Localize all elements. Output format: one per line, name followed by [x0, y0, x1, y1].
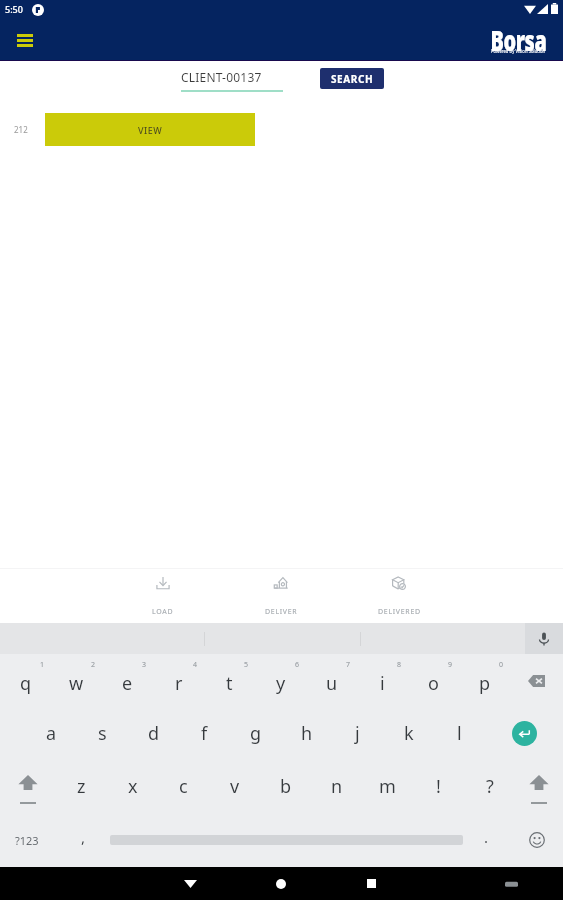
button[interactable]: Menu	[9, 24, 41, 56]
staticText: 5	[244, 660, 249, 670]
staticText: 8	[397, 660, 402, 670]
button[interactable]: s	[77, 707, 128, 760]
button[interactable]: LOAD	[104, 569, 222, 623]
staticText: v	[230, 774, 240, 799]
staticText: 5:50	[5, 3, 23, 15]
button[interactable]: g	[230, 707, 281, 760]
staticText: o	[428, 671, 439, 696]
staticText: n	[331, 774, 343, 799]
staticText: e	[122, 671, 133, 696]
button[interactable]: VIEW	[45, 113, 255, 146]
staticText: 6	[295, 660, 300, 670]
staticText: 7	[346, 660, 351, 670]
staticText: h	[301, 721, 313, 746]
button[interactable]: Back	[175, 867, 205, 900]
button[interactable]: r	[153, 654, 204, 707]
button[interactable]: ?	[464, 760, 515, 813]
button[interactable]: q	[0, 654, 51, 707]
staticText: Borsa	[490, 21, 547, 55]
staticText: f	[201, 721, 208, 746]
staticText: DELIVER	[265, 607, 298, 617]
button[interactable]: ?123	[0, 813, 56, 867]
button[interactable]: t	[204, 654, 255, 707]
staticText: !	[436, 774, 441, 799]
staticText: ?123	[15, 833, 39, 848]
staticText: VIEW	[138, 124, 163, 136]
button[interactable]: o	[408, 654, 459, 707]
button[interactable]: h	[281, 707, 332, 760]
button[interactable]: a	[26, 707, 77, 760]
button[interactable]: Home	[266, 867, 296, 900]
staticText: c	[179, 774, 188, 799]
button[interactable]: l	[434, 707, 485, 760]
staticText: d	[148, 721, 160, 746]
staticText: b	[280, 774, 292, 799]
staticText: m	[379, 774, 396, 799]
button[interactable]: b	[260, 760, 311, 813]
staticText: .	[484, 827, 489, 847]
staticText: 212	[14, 124, 28, 135]
button[interactable]: n	[311, 760, 362, 813]
staticText: LOAD	[152, 607, 174, 617]
staticText: z	[77, 774, 86, 799]
button[interactable]: Emoji	[510, 813, 563, 867]
button[interactable]: .	[463, 813, 510, 867]
button[interactable]: Shift	[515, 760, 563, 813]
staticText: y	[276, 671, 286, 696]
staticText: DELIVERED	[378, 607, 421, 617]
staticText: x	[128, 774, 138, 799]
staticText: q	[20, 671, 32, 696]
staticText: u	[326, 671, 338, 696]
button[interactable]: ,	[56, 813, 110, 867]
staticText: p	[479, 671, 491, 696]
staticText: l	[457, 721, 462, 746]
button[interactable]: f	[179, 707, 230, 760]
button[interactable]: Recents	[356, 867, 386, 900]
button[interactable]: SEARCH	[320, 68, 384, 89]
button[interactable]: Hide keyboard	[496, 867, 526, 900]
button[interactable]: m	[362, 760, 413, 813]
button[interactable]: e	[102, 654, 153, 707]
staticText: ?	[486, 774, 494, 799]
button[interactable]: Backspace	[510, 654, 563, 707]
staticText: s	[98, 721, 107, 746]
staticText: i	[380, 671, 385, 696]
staticText: CLIENT-00137	[181, 69, 262, 85]
staticText: g	[250, 721, 262, 746]
button[interactable]: DELIVERED	[340, 569, 458, 623]
button[interactable]: p	[459, 654, 510, 707]
staticText: r	[175, 671, 183, 696]
button[interactable]: Shift	[0, 760, 56, 813]
button[interactable]: x	[107, 760, 158, 813]
staticText: 4	[193, 660, 198, 670]
staticText: k	[404, 721, 414, 746]
staticText: 3	[142, 660, 147, 670]
staticText: t	[226, 671, 233, 696]
staticText: w	[69, 671, 84, 696]
button[interactable]: !	[413, 760, 464, 813]
button[interactable]: Voice input	[525, 623, 563, 654]
button[interactable]: Space	[110, 813, 463, 867]
button[interactable]: u	[306, 654, 357, 707]
staticText: Powered by Vision Solution	[491, 48, 546, 55]
staticText: SEARCH	[331, 72, 374, 86]
button[interactable]: c	[158, 760, 209, 813]
staticText: 2	[91, 660, 96, 670]
button[interactable]: Enter	[485, 707, 563, 760]
button[interactable]: DELIVER	[222, 569, 340, 623]
button[interactable]: v	[209, 760, 260, 813]
button[interactable]: i	[357, 654, 408, 707]
button[interactable]: w	[51, 654, 102, 707]
staticText: a	[46, 721, 57, 746]
staticText: 1	[40, 660, 45, 670]
button[interactable]: z	[56, 760, 107, 813]
staticText: ,	[81, 827, 86, 847]
staticText: j	[355, 721, 360, 746]
button[interactable]: k	[383, 707, 434, 760]
staticText: 0	[499, 660, 504, 670]
staticText: 9	[448, 660, 453, 670]
button[interactable]: d	[128, 707, 179, 760]
button[interactable]: j	[332, 707, 383, 760]
button[interactable]: y	[255, 654, 306, 707]
